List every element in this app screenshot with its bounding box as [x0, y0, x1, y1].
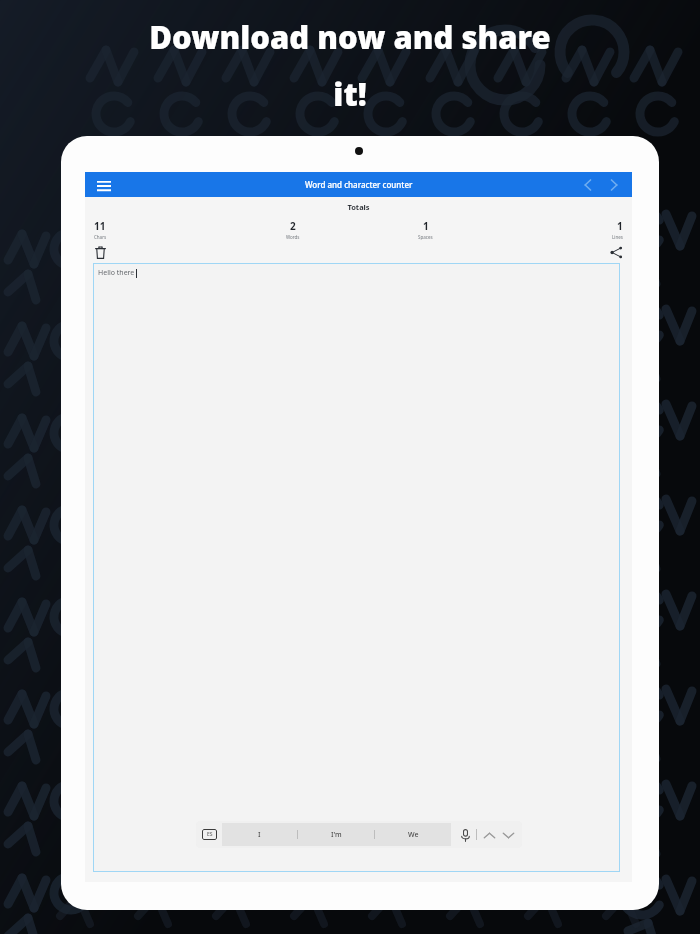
- staticText: Word and character counter: [305, 179, 413, 190]
- staticText: ES: [207, 831, 213, 838]
- button[interactable]: Hello there: [93, 263, 620, 872]
- staticText: 11: [94, 219, 106, 233]
- button[interactable]: I'm: [298, 823, 374, 846]
- button[interactable]: We: [375, 823, 451, 846]
- staticText: 2: [290, 219, 296, 233]
- staticText: Words: [286, 234, 300, 240]
- button[interactable]: Next: [604, 175, 624, 195]
- staticText: I'm: [331, 830, 342, 840]
- button[interactable]: Clear text: [92, 244, 109, 261]
- button[interactable]: Previous: [578, 175, 598, 195]
- button[interactable]: Next suggestion: [500, 827, 516, 843]
- button[interactable]: Share: [608, 244, 625, 261]
- staticText: Hello there: [98, 268, 135, 278]
- staticText: Spaces: [418, 234, 433, 240]
- button[interactable]: Previous suggestion: [481, 827, 497, 843]
- staticText: Totals: [85, 202, 632, 212]
- button[interactable]: Voice input: [457, 827, 473, 843]
- staticText: 1: [617, 219, 623, 233]
- button[interactable]: I: [222, 823, 297, 846]
- button[interactable]: ES: [202, 829, 217, 840]
- staticText: Chars: [94, 234, 107, 240]
- button[interactable]: Menu: [94, 175, 114, 195]
- staticText: Download now and share it!: [149, 16, 551, 115]
- staticText: Lines: [612, 234, 623, 240]
- staticText: I: [258, 830, 261, 840]
- staticText: 1: [423, 219, 429, 233]
- staticText: We: [408, 830, 419, 840]
